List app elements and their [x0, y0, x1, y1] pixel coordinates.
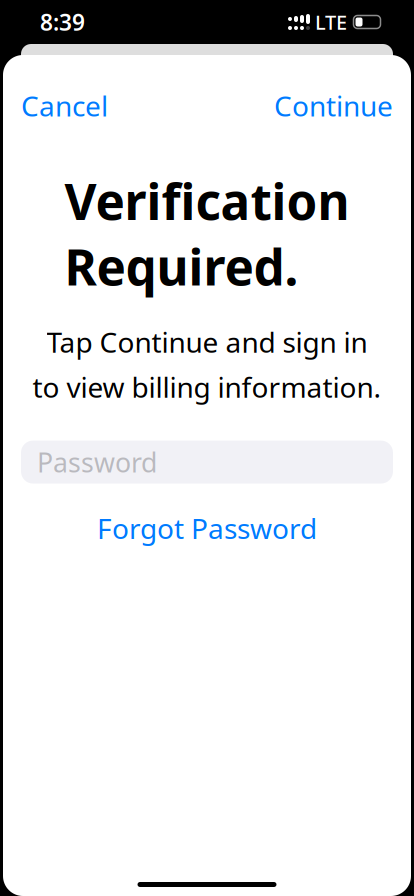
- staticText: LTE: [315, 9, 347, 35]
- staticText: Password: [37, 444, 157, 480]
- button[interactable]: Cancel: [3, 79, 126, 132]
- staticText: to view billing information.: [32, 368, 381, 406]
- button[interactable]: Password: [21, 441, 393, 484]
- staticText: 8:39: [40, 7, 85, 37]
- staticText: Tap Continue and sign in: [46, 323, 367, 360]
- button[interactable]: Forgot Password: [81, 500, 333, 557]
- staticText: Forgot Password: [97, 510, 317, 547]
- button[interactable]: Continue: [256, 79, 411, 132]
- staticText: Cancel: [21, 87, 108, 124]
- staticText: Verification Required.: [64, 168, 349, 299]
- staticText: Continue: [274, 87, 393, 124]
